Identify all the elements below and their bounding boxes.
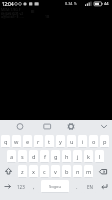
button[interactable]: , [29,180,39,193]
staticText: 123 [17,184,25,190]
button[interactable]: s [18,150,27,163]
staticText: z [21,168,24,176]
button[interactable] [0,164,17,179]
button[interactable]: y [56,135,65,148]
staticText: 终端模拟器 v2 [1,11,24,16]
staticText: t [48,138,51,146]
button[interactable]: f [40,150,49,163]
button[interactable]: t [45,135,54,148]
staticText: e [26,138,30,146]
button[interactable]: w [12,135,21,148]
staticText: MEM:1.9G F [1,7,21,12]
button[interactable]: o [89,135,98,148]
button[interactable]: z [18,165,27,178]
staticText: w [14,138,19,146]
staticText: a [10,153,14,161]
staticText: g [54,153,58,161]
button[interactable]: Sogou [41,180,69,193]
button[interactable]: r [34,135,43,148]
staticText: a@local:~$ ..... [1,14,25,19]
staticText: h [65,153,69,161]
staticText: l [99,153,101,161]
button[interactable]: e [23,135,32,148]
staticText: k [87,153,90,161]
button[interactable]: n [73,165,82,178]
button[interactable]: b [62,165,71,178]
button[interactable]: c [40,165,49,178]
staticText: i [82,138,84,146]
button[interactable]: q [1,135,10,148]
button[interactable]: h [62,150,71,163]
staticText: o [92,138,96,146]
staticText: , [33,183,35,191]
button[interactable]: l [95,150,104,163]
button[interactable]: d [29,150,38,163]
staticText: j [77,153,79,161]
staticText: r [37,138,40,146]
button[interactable]: i [78,135,87,148]
button[interactable]: EN [84,180,96,193]
staticText: % [74,2,77,6]
button[interactable]: m [84,165,93,178]
button[interactable] [0,120,112,134]
staticText: 1B [45,14,50,19]
button[interactable] [97,179,112,194]
staticText: c [43,168,46,176]
staticText: x [32,168,35,176]
staticText: n [76,168,80,176]
staticText: 12:04 [2,1,14,7]
button[interactable]: v [51,165,60,178]
button[interactable]: g [51,150,60,163]
staticText: 44 [104,1,109,6]
staticText: f [44,153,46,161]
staticText: s [21,153,24,161]
button[interactable]: u [67,135,76,148]
staticText: b [65,168,69,176]
button[interactable]: x [29,165,38,178]
button[interactable]: p [100,135,109,148]
button[interactable]: k [84,150,93,163]
staticText: EN [87,184,93,190]
button[interactable] [0,179,14,194]
staticText: v [54,168,57,176]
button[interactable]: j [73,150,82,163]
staticText: m [86,168,92,176]
staticText: y [59,138,62,146]
staticText: u [70,138,74,146]
staticText: p [103,138,107,146]
button[interactable]: 123 [14,179,28,194]
button[interactable] [94,164,111,179]
button[interactable]: a [7,150,16,163]
staticText: Sogou [49,184,61,189]
staticText: q [4,138,8,146]
staticText: (E [31,9,35,14]
button[interactable]: . [71,180,82,193]
staticText: . [76,183,78,191]
staticText: d [32,153,36,161]
staticText: 0.34 [65,1,73,6]
